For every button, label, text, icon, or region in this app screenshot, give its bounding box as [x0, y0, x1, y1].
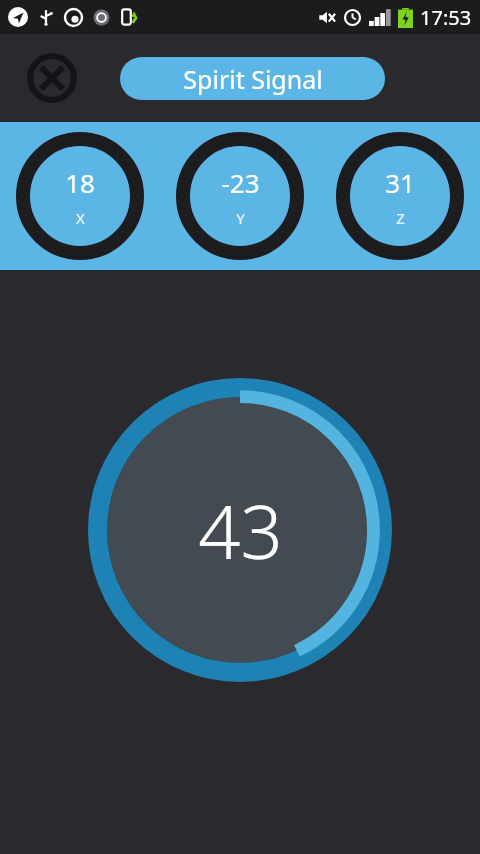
staticText: X	[76, 208, 85, 228]
staticText: 43	[198, 480, 283, 581]
staticText: 31	[385, 165, 415, 200]
button[interactable]: 31	[336, 132, 464, 260]
button[interactable]: Spirit Signal	[120, 57, 385, 100]
staticText: -23	[221, 165, 260, 200]
button[interactable]: 43	[88, 378, 392, 682]
button[interactable]: Close	[24, 50, 80, 106]
button[interactable]: 18	[16, 132, 144, 260]
staticText: 17:53	[420, 4, 472, 31]
button[interactable]: -23	[176, 132, 304, 260]
staticText: Y	[236, 208, 245, 228]
staticText: Spirit Signal	[183, 62, 323, 96]
staticText: Z	[396, 208, 405, 228]
staticText: 18	[65, 165, 95, 200]
